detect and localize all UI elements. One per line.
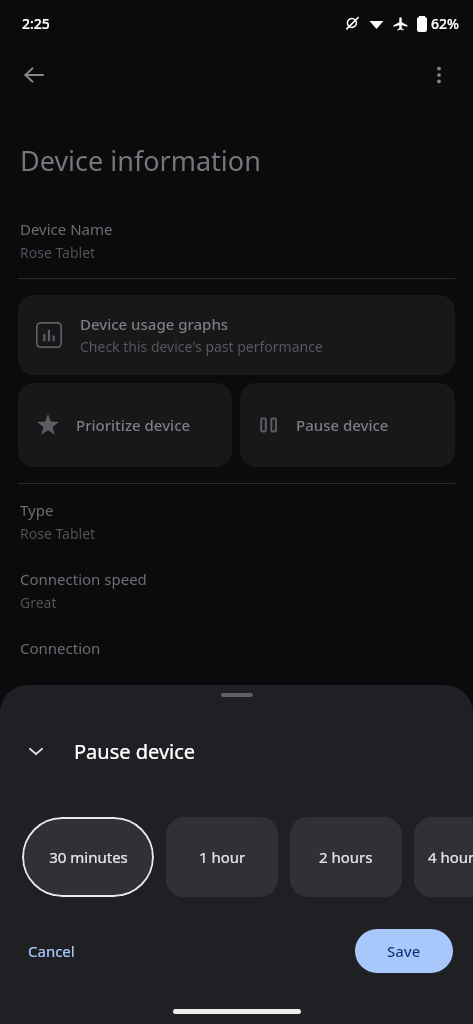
staticText: Connection xyxy=(20,638,101,658)
staticText: Cancel xyxy=(28,941,75,961)
staticText: Check this device's past performance xyxy=(80,337,323,356)
button[interactable]: Device usage graphs xyxy=(18,295,455,375)
staticText: Rose Tablet xyxy=(20,243,96,262)
button[interactable]: 30 minutes xyxy=(22,817,154,897)
button[interactable]: 2 hours xyxy=(290,817,402,897)
staticText: 62% xyxy=(431,14,459,33)
button[interactable]: Cancel xyxy=(20,933,83,969)
staticText: Prioritize device xyxy=(76,415,191,435)
staticText: Type xyxy=(20,500,54,520)
staticText: Device usage graphs xyxy=(80,314,229,334)
staticText: 2 hours xyxy=(319,847,373,867)
staticText: Connection speed xyxy=(20,569,147,589)
staticText: 2:25 xyxy=(22,14,50,33)
staticText: Save xyxy=(387,941,421,961)
button[interactable]: Collapse xyxy=(18,733,54,769)
button[interactable]: 4 hours xyxy=(414,817,473,897)
staticText: Great xyxy=(20,593,57,612)
button[interactable]: Back xyxy=(12,53,56,97)
staticText: Device information xyxy=(20,142,261,179)
staticText: 4 hours xyxy=(428,847,473,867)
staticText: 30 minutes xyxy=(49,847,128,867)
button[interactable]: Save xyxy=(355,929,453,973)
button[interactable]: Pause device xyxy=(240,383,455,467)
staticText: 1 hour xyxy=(199,847,246,867)
staticText: Rose Tablet xyxy=(20,524,96,543)
staticText: Pause device xyxy=(296,415,389,435)
staticText: Device Name xyxy=(20,219,113,239)
staticText: Pause device xyxy=(74,738,196,765)
button[interactable]: More options xyxy=(417,53,461,97)
button[interactable]: Prioritize device xyxy=(18,383,232,467)
button[interactable]: 1 hour xyxy=(166,817,278,897)
